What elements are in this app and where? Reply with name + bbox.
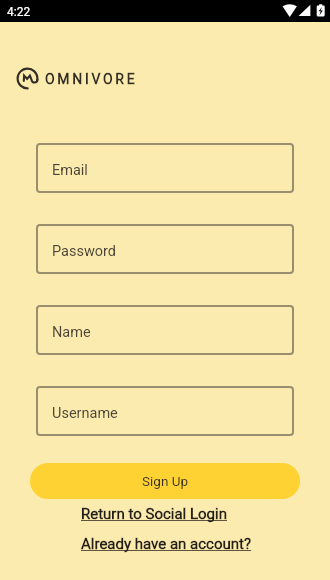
staticText: Name [52, 324, 91, 341]
staticText: Already have an account? [81, 535, 252, 553]
staticText: Return to Social Login [81, 505, 227, 523]
button[interactable]: Email [36, 143, 294, 193]
staticText: OMNIVORE [45, 71, 138, 87]
button[interactable]: Return to Social Login [81, 505, 227, 523]
button[interactable]: Password [36, 224, 294, 274]
staticText: Email [52, 162, 88, 179]
button[interactable]: Username [36, 386, 294, 436]
staticText: Username [52, 405, 118, 422]
staticText: Sign Up [142, 473, 189, 489]
button[interactable]: Sign Up [30, 463, 300, 499]
other: Omnivore logo [16, 67, 39, 90]
button[interactable]: Name [36, 305, 294, 355]
staticText: 4:22 [7, 5, 31, 19]
button[interactable]: Already have an account? [81, 535, 252, 553]
staticText: Password [52, 243, 117, 260]
